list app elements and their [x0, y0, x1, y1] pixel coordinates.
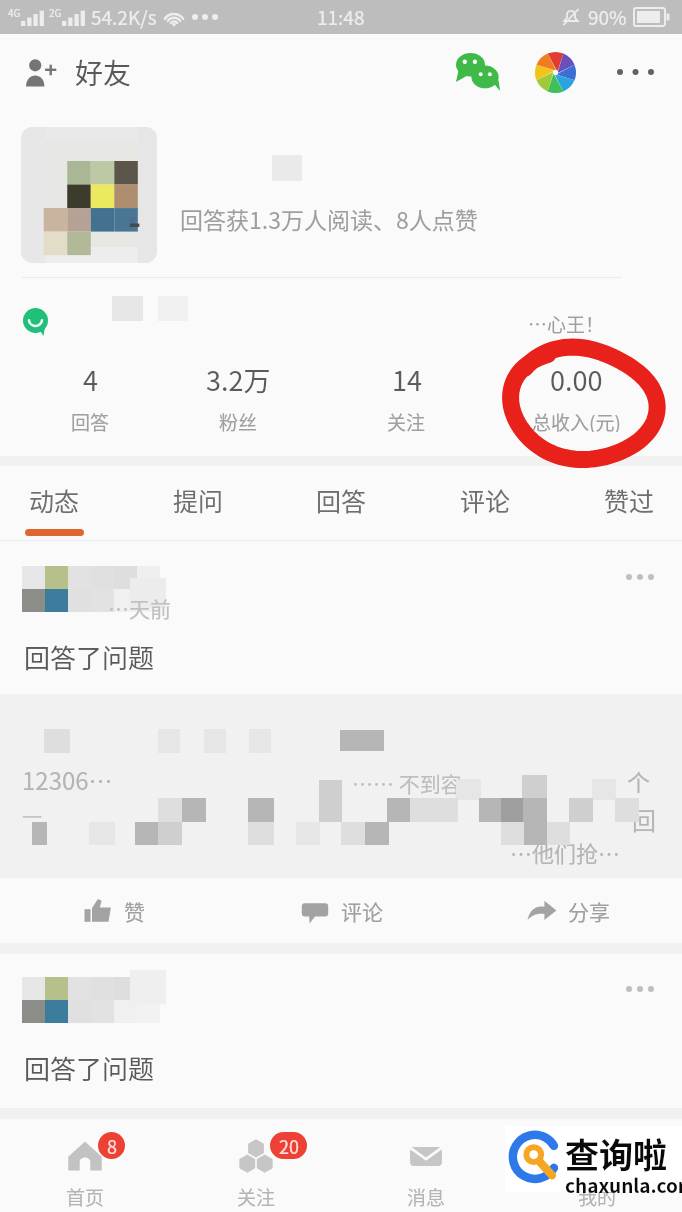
button[interactable]: 4 [10, 360, 170, 432]
staticText: 评论 [460, 482, 511, 518]
button[interactable]: 评论 [228, 878, 455, 943]
staticText: 首页 [66, 1183, 105, 1211]
button[interactable]: 回答 [281, 466, 401, 540]
staticText: 好友 [75, 52, 132, 93]
staticText: 消息 [407, 1183, 446, 1211]
staticText: 分享 [568, 896, 610, 926]
staticText: 0.00 [550, 360, 603, 399]
staticText: 赞过 [604, 482, 655, 518]
button[interactable]: 赞过 [569, 466, 682, 540]
staticText: 回答了问题 [24, 638, 155, 676]
staticText: 2G [49, 5, 62, 19]
staticText: 回答获1.3万人阅读、8人点赞 [180, 202, 478, 235]
button[interactable]: 动态 [0, 466, 114, 540]
staticText: 4G [8, 5, 21, 19]
staticText: 8 [107, 1133, 117, 1159]
staticText: 我的 [578, 1183, 617, 1211]
staticText: 粉丝 [219, 408, 258, 432]
staticText: 评论 [341, 896, 383, 926]
button[interactable]: 20 [171, 1119, 341, 1212]
staticText: 回答了问题 [24, 1049, 155, 1087]
button[interactable]: 8 [0, 1119, 170, 1212]
staticText: 12306… [22, 762, 113, 797]
staticText: 14 [392, 360, 422, 399]
staticText: 赞 [124, 896, 145, 926]
staticText: 回 [632, 802, 656, 837]
button[interactable]: 我的 [512, 1119, 682, 1212]
staticText: 11:48 [317, 3, 365, 31]
button[interactable]: More options [609, 46, 661, 98]
button[interactable]: WeChat [452, 46, 504, 98]
button[interactable]: 赞 [0, 878, 228, 943]
button[interactable]: Avatar [21, 127, 157, 263]
staticText: 一 [22, 802, 42, 831]
staticText: …… 不到容 [352, 768, 462, 798]
staticText: …心王！ [528, 310, 605, 338]
staticText: 20 [279, 1133, 299, 1159]
button[interactable]: More [612, 972, 668, 1006]
staticText: 提问 [173, 482, 224, 518]
button[interactable]: 消息 [341, 1119, 511, 1212]
button[interactable]: 评论 [425, 466, 545, 540]
staticText: 3.2万 [206, 360, 271, 399]
staticText: …天前 [108, 593, 171, 623]
staticText: …他们抢… [510, 836, 621, 868]
staticText: 回答 [71, 408, 110, 432]
staticText: 关注 [387, 408, 426, 432]
staticText: chaxunla.com [565, 1171, 682, 1199]
staticText: 关注 [237, 1183, 276, 1211]
staticText: 90% [588, 3, 627, 31]
button[interactable]: 提问 [138, 466, 258, 540]
button[interactable]: 14 [326, 360, 486, 432]
button[interactable]: 好友 [24, 52, 132, 93]
button[interactable]: 分享 [455, 878, 682, 943]
button[interactable]: Camera [529, 46, 581, 98]
button[interactable]: More [612, 560, 668, 594]
button[interactable]: 3.2万 [158, 360, 318, 432]
staticText: 54.2K/s [91, 3, 157, 31]
staticText: 总收入(元) [532, 408, 621, 432]
staticText: 个 [627, 764, 650, 797]
button[interactable]: 0.00 [496, 360, 656, 432]
staticText: 查询啦 [565, 1129, 667, 1178]
staticText: 4 [83, 360, 98, 399]
staticText: 回答 [316, 482, 367, 518]
staticText: 动态 [29, 482, 80, 518]
